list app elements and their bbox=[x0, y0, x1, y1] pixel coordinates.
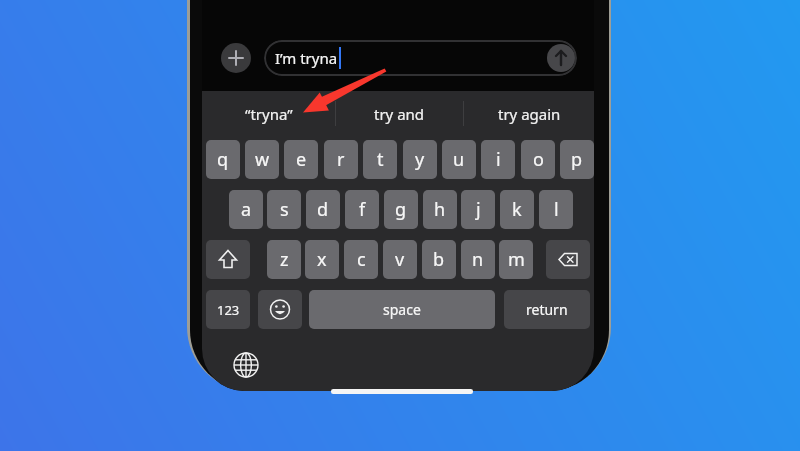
staticText: p bbox=[571, 147, 583, 172]
button[interactable]: b bbox=[422, 240, 456, 279]
button[interactable]: i bbox=[481, 140, 515, 179]
staticText: o bbox=[533, 147, 544, 172]
staticText: d bbox=[317, 197, 329, 222]
button[interactable]: o bbox=[521, 140, 555, 179]
staticText: j bbox=[476, 197, 481, 222]
button[interactable] bbox=[258, 290, 302, 329]
staticText: v bbox=[395, 247, 405, 272]
staticText: x bbox=[317, 247, 327, 272]
button[interactable]: p bbox=[560, 140, 594, 179]
staticText: b bbox=[433, 247, 445, 272]
staticText: q bbox=[217, 147, 229, 172]
button[interactable]: j bbox=[461, 190, 495, 229]
staticText: 123 bbox=[217, 301, 240, 319]
button[interactable]: c bbox=[344, 240, 378, 279]
button[interactable]: g bbox=[384, 190, 418, 229]
button[interactable]: r bbox=[324, 140, 358, 179]
button[interactable]: k bbox=[500, 190, 534, 229]
staticText: r bbox=[337, 147, 345, 172]
staticText: t bbox=[377, 147, 384, 172]
button[interactable]: y bbox=[403, 140, 437, 179]
button[interactable]: v bbox=[383, 240, 417, 279]
button[interactable]: f bbox=[345, 190, 379, 229]
staticText: w bbox=[255, 147, 270, 172]
button[interactable] bbox=[233, 352, 259, 378]
staticText: “tryna” bbox=[245, 104, 293, 124]
staticText: c bbox=[357, 247, 366, 272]
button[interactable]: 123 bbox=[206, 290, 250, 329]
button[interactable] bbox=[206, 240, 250, 279]
button[interactable]: d bbox=[306, 190, 340, 229]
button[interactable]: space bbox=[309, 290, 495, 329]
button[interactable]: m bbox=[499, 240, 533, 279]
staticText: i bbox=[496, 147, 501, 172]
button[interactable]: h bbox=[423, 190, 457, 229]
staticText: n bbox=[472, 247, 484, 272]
staticText: u bbox=[453, 147, 465, 172]
staticText: return bbox=[526, 300, 568, 319]
button[interactable]: q bbox=[206, 140, 240, 179]
button[interactable]: a bbox=[229, 190, 263, 229]
staticText: h bbox=[434, 197, 446, 222]
button[interactable]: return bbox=[504, 290, 590, 329]
staticText: try again bbox=[498, 104, 561, 124]
staticText: g bbox=[395, 197, 407, 222]
button[interactable]: e bbox=[284, 140, 318, 179]
staticText: I’m tryna bbox=[275, 48, 338, 68]
button[interactable]: “tryna” bbox=[202, 91, 335, 136]
button[interactable]: n bbox=[461, 240, 495, 279]
staticText: e bbox=[296, 147, 307, 172]
button[interactable]: I’m tryna bbox=[264, 40, 577, 76]
button[interactable]: s bbox=[267, 190, 301, 229]
button[interactable]: try again bbox=[463, 91, 595, 136]
button[interactable] bbox=[221, 43, 251, 73]
staticText: s bbox=[280, 197, 289, 222]
staticText: f bbox=[359, 197, 366, 222]
button[interactable]: try and bbox=[335, 91, 463, 136]
staticText: l bbox=[554, 197, 559, 222]
staticText: k bbox=[512, 197, 522, 222]
button[interactable]: w bbox=[245, 140, 279, 179]
button[interactable] bbox=[546, 240, 590, 279]
button[interactable]: z bbox=[267, 240, 301, 279]
button[interactable]: t bbox=[363, 140, 397, 179]
staticText: try and bbox=[374, 104, 425, 124]
staticText: a bbox=[241, 197, 252, 222]
button[interactable]: u bbox=[442, 140, 476, 179]
button[interactable]: x bbox=[305, 240, 339, 279]
button[interactable] bbox=[547, 44, 575, 72]
staticText: m bbox=[508, 247, 525, 272]
staticText: space bbox=[383, 300, 421, 319]
staticText: y bbox=[415, 147, 425, 172]
staticText: z bbox=[280, 247, 289, 272]
button[interactable]: l bbox=[539, 190, 573, 229]
